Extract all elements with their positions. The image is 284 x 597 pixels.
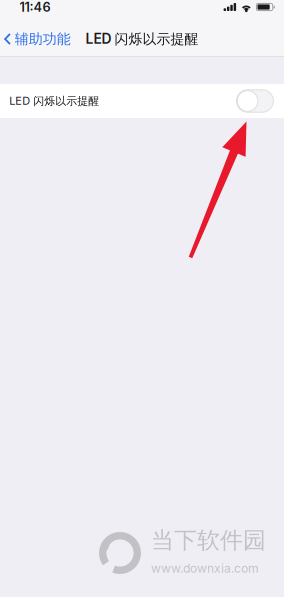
staticText: LED 闪烁以示提醒 bbox=[9, 94, 99, 108]
staticText: 当下软件园 bbox=[151, 526, 266, 555]
staticText: 辅助功能 bbox=[15, 30, 71, 48]
staticText: www.downxia.com bbox=[151, 561, 259, 576]
button[interactable]: LED 闪烁以示提醒 bbox=[0, 84, 284, 118]
staticText: 11:46 bbox=[19, 0, 50, 15]
staticText: LED 闪烁以示提醒 bbox=[85, 30, 198, 48]
button[interactable]: 辅助功能 bbox=[0, 22, 77, 56]
